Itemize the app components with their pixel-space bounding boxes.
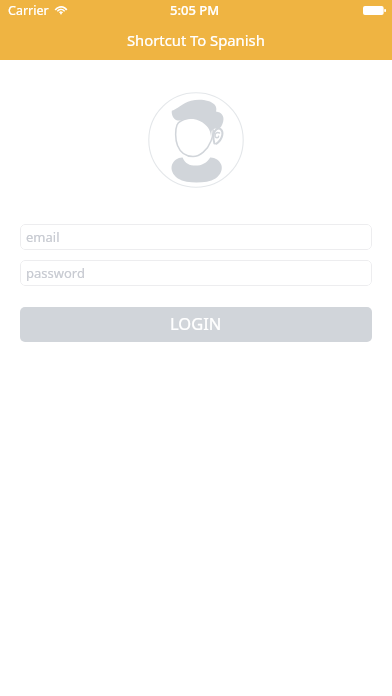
- staticText: Carrier: [8, 2, 49, 19]
- staticText: password: [26, 264, 85, 282]
- staticText: Shortcut To Spanish: [127, 30, 265, 50]
- button[interactable]: password: [20, 260, 372, 286]
- staticText: 5:05 PM: [170, 1, 220, 19]
- button[interactable]: email: [20, 224, 372, 250]
- staticText: email: [26, 228, 60, 246]
- staticText: LOGIN: [170, 312, 222, 334]
- button[interactable]: LOGIN: [20, 307, 372, 342]
